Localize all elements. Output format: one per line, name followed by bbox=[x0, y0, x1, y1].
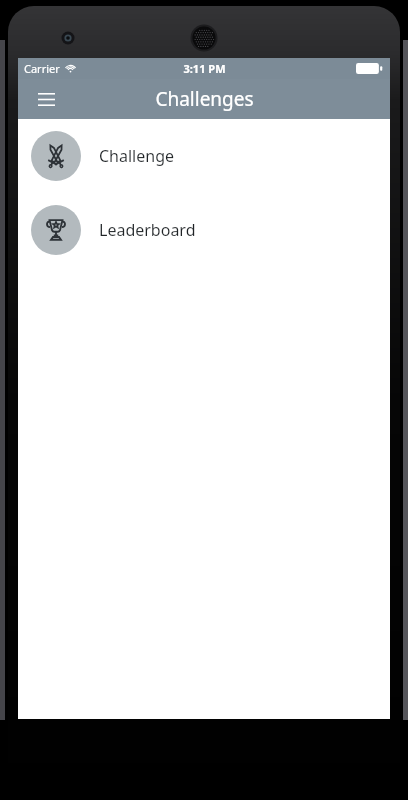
staticText: Leaderboard bbox=[99, 219, 196, 241]
button[interactable]: Open navigation menu bbox=[26, 79, 66, 119]
staticText: Challenges bbox=[155, 86, 254, 112]
staticText: Challenge bbox=[99, 145, 175, 167]
button[interactable]: Leaderboard bbox=[18, 205, 390, 255]
staticText: Carrier bbox=[24, 61, 60, 76]
staticText: 3:11 PM bbox=[183, 61, 226, 76]
button[interactable]: Challenge bbox=[18, 131, 390, 181]
